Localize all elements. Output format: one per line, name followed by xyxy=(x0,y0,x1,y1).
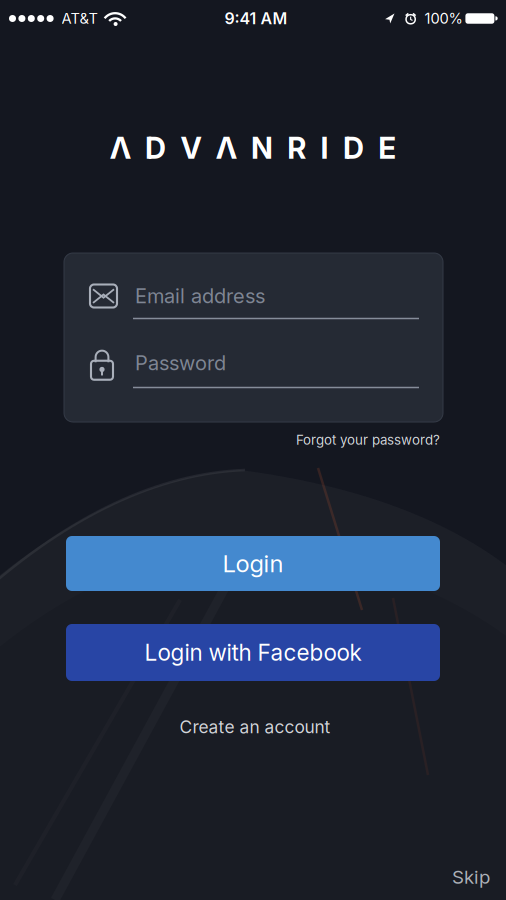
staticText: Create an account xyxy=(179,717,330,737)
staticText: D xyxy=(145,131,166,165)
staticText: Λ xyxy=(216,131,237,165)
staticText: R xyxy=(287,131,306,165)
staticText: 100% xyxy=(424,10,462,27)
staticText: Email address xyxy=(135,284,265,308)
button[interactable]: Login with Facebook xyxy=(66,624,440,681)
button[interactable]: Skip xyxy=(452,866,490,888)
staticText: V xyxy=(180,131,201,165)
staticText: Forgot your password? xyxy=(296,432,440,448)
staticText: E xyxy=(378,131,396,165)
staticText: I xyxy=(321,131,329,165)
staticText: N xyxy=(251,131,273,165)
staticText: Skip xyxy=(452,866,490,888)
staticText: D xyxy=(343,131,364,165)
staticText: Login with Facebook xyxy=(144,639,361,666)
staticText: Login xyxy=(222,549,283,578)
staticText: Password xyxy=(135,351,226,375)
button[interactable]: Forgot your password? xyxy=(296,432,440,448)
button[interactable]: Login xyxy=(66,536,440,591)
staticText: Λ xyxy=(110,131,131,165)
staticText: 9:41 AM xyxy=(224,9,287,28)
button[interactable]: Create an account xyxy=(179,717,330,737)
staticText: AT&T xyxy=(62,10,98,27)
